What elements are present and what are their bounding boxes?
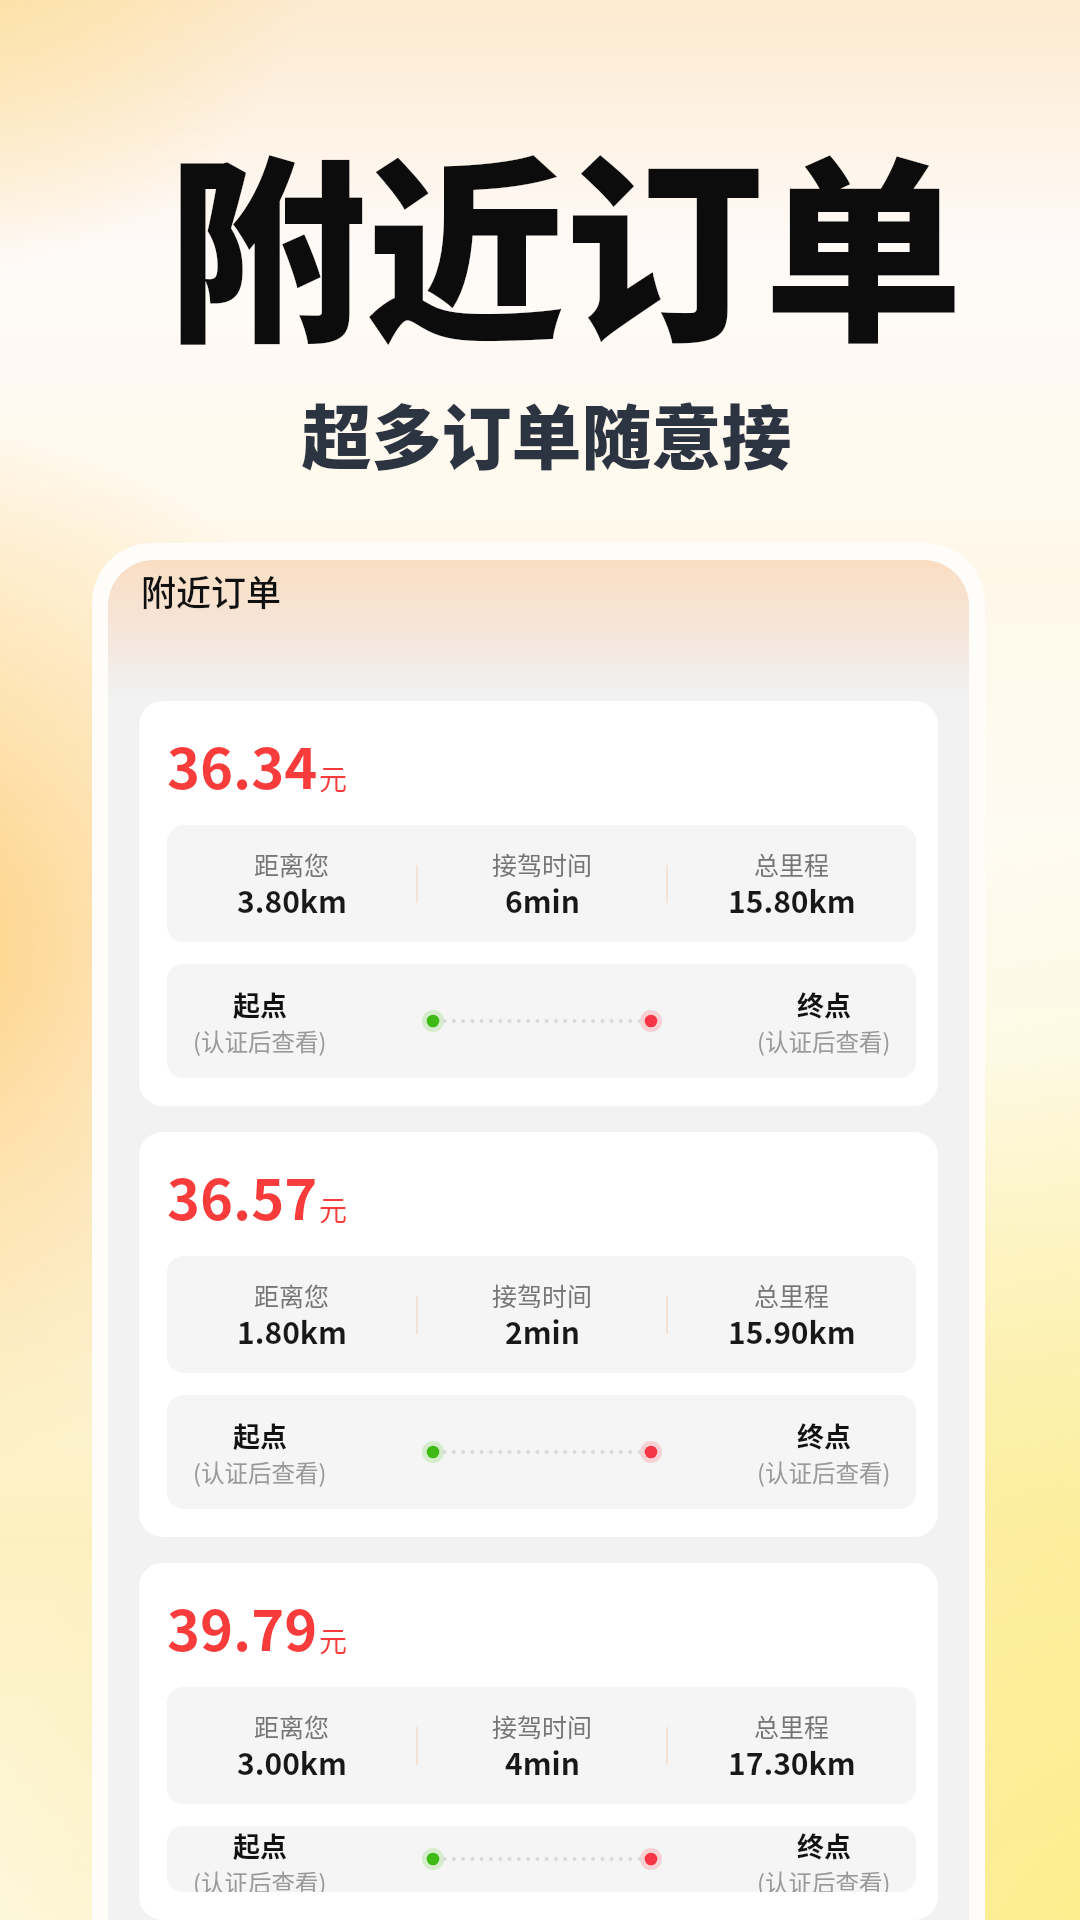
other: Route from pickup to destination [422,1008,662,1034]
other: Route from pickup to destination [422,1846,662,1872]
staticText: (认证后查看) [193,1024,327,1058]
staticText: 起点 [233,985,287,1024]
staticText: 总里程 [754,1708,830,1744]
staticText: 附近订单 [50,94,1080,382]
staticText: 6min [505,878,580,921]
staticText: 4min [505,1740,580,1783]
staticText: (认证后查看) [757,1024,891,1058]
staticText: 3.80km [237,878,347,921]
button[interactable]: 36.57 [139,1132,938,1537]
staticText: (认证后查看) [193,1865,327,1892]
staticText: 终点 [797,985,851,1024]
staticText: 39.79 [167,1586,318,1667]
staticText: 15.80km [728,878,856,921]
staticText: 距离您 [254,846,330,882]
other: Route from pickup to destination [422,1439,662,1465]
button[interactable]: 39.79 [139,1563,938,1920]
button[interactable]: 36.34 [139,701,938,1106]
staticText: 距离您 [254,1708,330,1744]
staticText: 起点 [233,1416,287,1455]
staticText: 起点 [233,1826,287,1865]
staticText: 元 [319,1620,348,1661]
staticText: 接驾时间 [492,1277,593,1313]
staticText: 15.90km [728,1309,856,1352]
staticText: 接驾时间 [492,846,593,882]
staticText: (认证后查看) [757,1865,891,1892]
staticText: 3.00km [237,1740,347,1783]
staticText: 距离您 [254,1277,330,1313]
staticText: 附近订单 [141,565,282,616]
staticText: 接驾时间 [492,1708,593,1744]
staticText: 36.57 [167,1155,318,1236]
staticText: 2min [505,1309,580,1352]
staticText: (认证后查看) [193,1455,327,1489]
staticText: 1.80km [237,1309,347,1352]
staticText: 超多订单随意接 [13,383,1080,484]
staticText: 总里程 [754,846,830,882]
staticText: 元 [319,1189,348,1230]
staticText: (认证后查看) [757,1455,891,1489]
staticText: 元 [319,758,348,799]
staticText: 终点 [797,1826,851,1865]
staticText: 17.30km [728,1740,856,1783]
staticText: 终点 [797,1416,851,1455]
staticText: 36.34 [167,724,318,805]
staticText: 总里程 [754,1277,830,1313]
